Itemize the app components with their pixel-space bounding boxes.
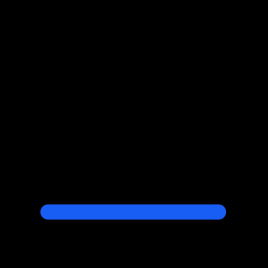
button[interactable]: Primary action bbox=[40, 204, 226, 220]
